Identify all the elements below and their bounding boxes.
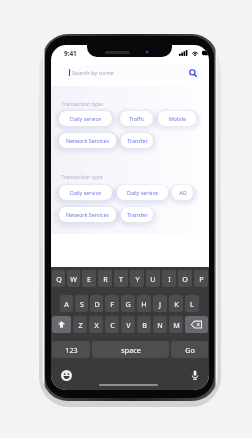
staticText: Traffic [129,115,145,122]
staticText: C [110,320,115,330]
button[interactable]: V [121,316,135,333]
button[interactable]: Go [171,341,208,358]
button[interactable]: Backspace [185,316,208,333]
other: Search [189,69,197,77]
staticText: 123 [65,345,78,355]
button[interactable]: C [105,316,119,333]
staticText: R [103,274,108,284]
staticText: K [174,299,179,309]
staticText: W [70,274,77,284]
button[interactable]: D [90,295,103,312]
staticText: AO [179,189,187,196]
staticText: M [173,320,180,330]
button[interactable]: B [137,316,151,333]
staticText: A [64,299,69,309]
button[interactable]: Voice input [190,370,200,380]
staticText: space [121,345,141,355]
staticText: L [190,299,194,309]
staticText: Q [56,274,62,284]
button[interactable]: N [153,316,167,333]
staticText: Search by name [72,69,114,77]
button[interactable]: Shift [52,316,71,333]
button[interactable]: M [169,316,183,333]
button[interactable]: Q [52,270,65,287]
button[interactable]: E [82,270,96,287]
button[interactable]: Emoji [61,370,72,381]
button[interactable]: G [121,295,135,312]
staticText: O [182,274,188,284]
button[interactable]: I [162,270,176,287]
button[interactable]: Network Services [59,207,116,222]
button[interactable]: W [67,270,80,287]
staticText: D [94,299,100,309]
staticText: P [199,274,204,284]
staticText: Transaction type [61,173,103,180]
staticText: Y [135,274,140,284]
button[interactable]: S [75,295,88,312]
button[interactable]: K [169,295,183,312]
staticText: 9:41 [64,49,77,58]
staticText: Z [78,320,83,330]
button[interactable]: Network Services [59,133,116,148]
staticText: Network Services [66,211,109,218]
button[interactable]: U [146,270,160,287]
staticText: Daily service [70,189,101,196]
button[interactable]: Daily service [59,185,112,200]
staticText: Transaction type [61,100,103,107]
staticText: V [126,320,131,330]
staticText: N [157,320,163,330]
button[interactable]: L [185,295,199,312]
button[interactable]: Traffic [120,111,153,126]
button[interactable]: Daily service [59,111,112,126]
button[interactable]: T [114,270,128,287]
button[interactable]: Mobile [158,111,196,126]
button[interactable]: AO [172,185,193,200]
button[interactable]: Transfer [121,133,153,148]
button[interactable]: J [153,295,167,312]
staticText: Daily service [127,189,158,196]
staticText: T [119,274,123,284]
button[interactable]: Y [130,270,144,287]
staticText: S [80,299,84,309]
button[interactable]: Daily service [117,185,168,200]
staticText: J [159,299,161,309]
staticText: I [168,274,171,284]
button[interactable]: Transfer [121,207,153,222]
staticText: Transfer [127,211,148,218]
staticText: U [150,274,156,284]
staticText: X [94,320,99,330]
staticText: Transfer [127,137,148,144]
staticText: Mobile [169,115,186,122]
button[interactable]: H [137,295,151,312]
staticText: E [87,274,91,284]
button[interactable]: R [98,270,112,287]
staticText: F [110,299,114,309]
staticText: Network Services [66,137,109,144]
button[interactable]: F [105,295,119,312]
button[interactable]: space [92,341,169,358]
button[interactable]: X [89,316,103,333]
staticText: Go [185,345,195,355]
staticText: Daily service [70,115,101,122]
staticText: B [142,320,147,330]
button[interactable]: P [194,270,208,287]
staticText: G [125,299,131,309]
button[interactable]: 123 [52,341,90,358]
button[interactable]: O [178,270,192,287]
button[interactable]: Search by name [62,65,203,80]
staticText: H [141,299,147,309]
button[interactable]: Z [73,316,87,333]
button[interactable]: A [60,295,73,312]
